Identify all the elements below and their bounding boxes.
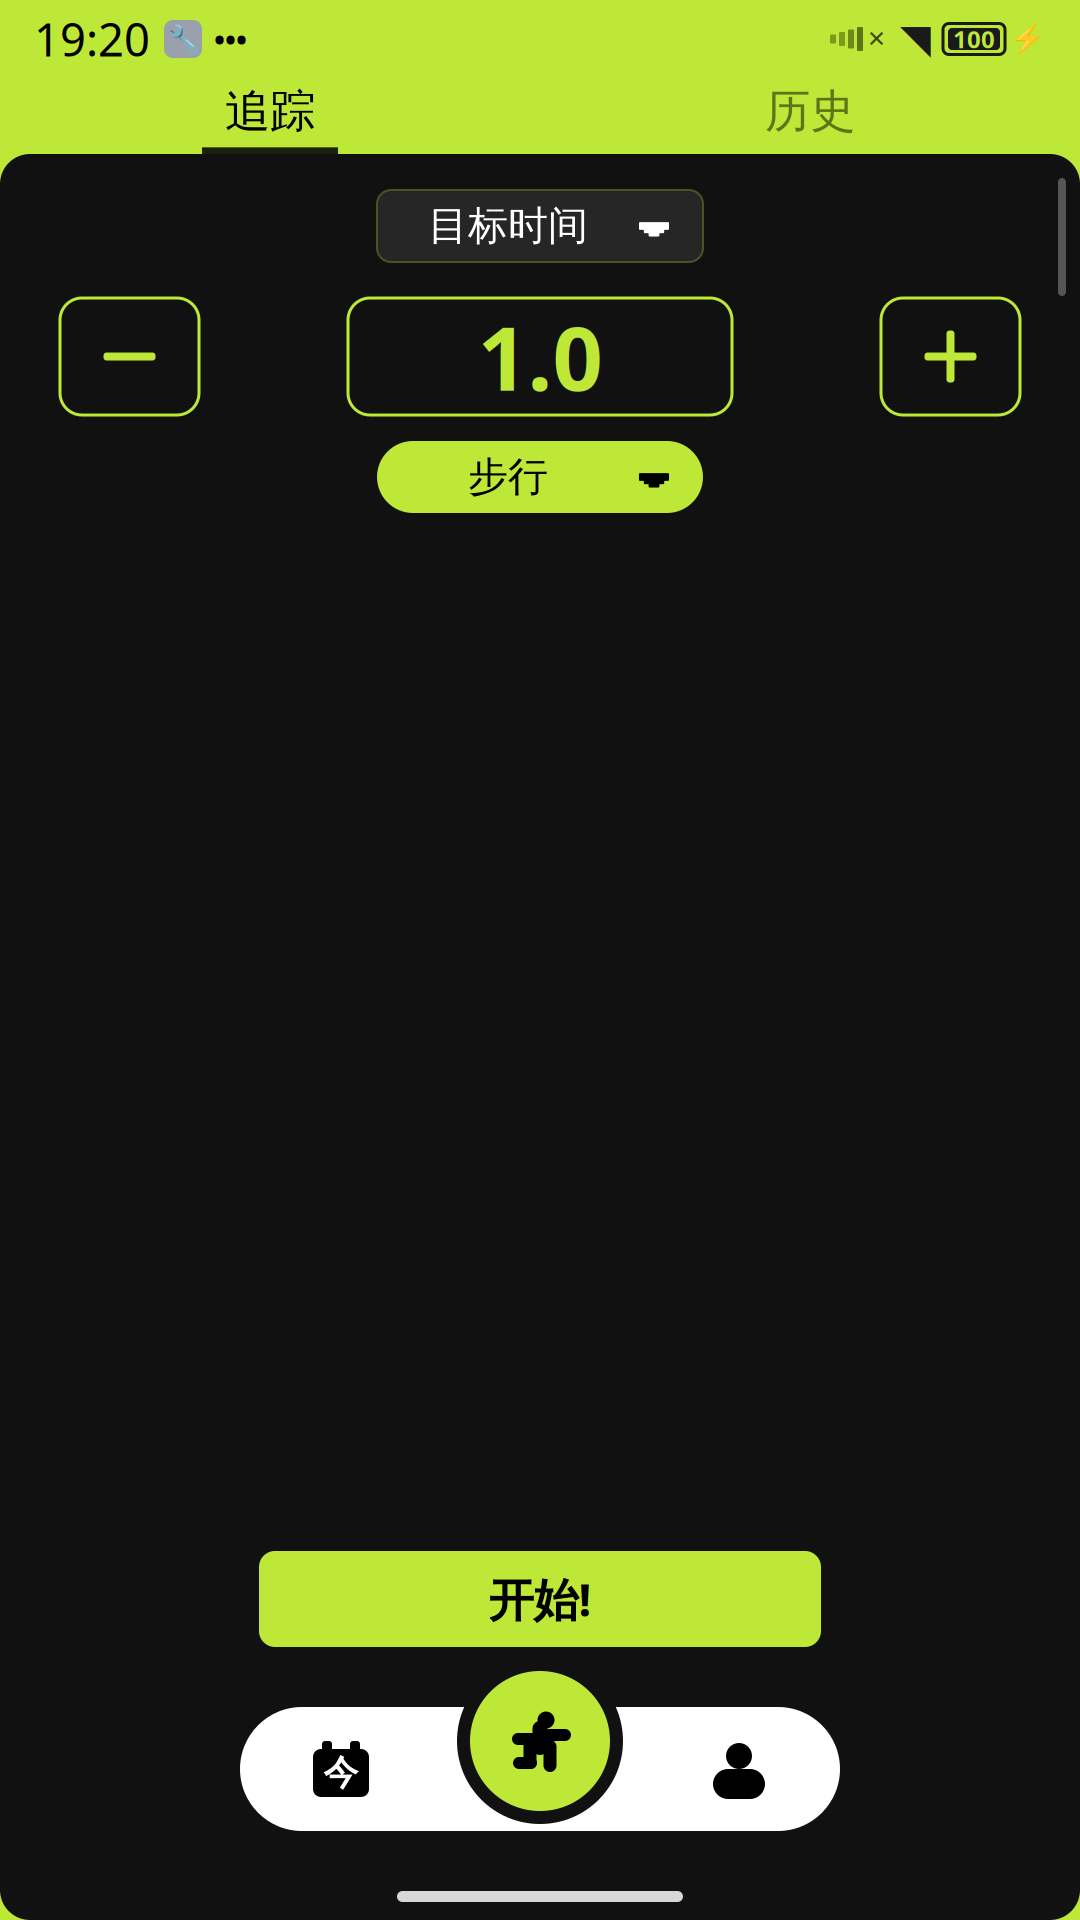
button[interactable]: 历史 <box>540 78 1080 154</box>
button[interactable]: Decrease <box>60 298 199 415</box>
staticText: 开始! <box>488 1569 591 1629</box>
button[interactable]: 1.0 <box>348 298 732 415</box>
staticText: 100 <box>953 23 995 55</box>
staticText: ◥ <box>900 16 931 62</box>
staticText: 1.0 <box>477 298 602 415</box>
button[interactable]: Today <box>240 1707 442 1831</box>
button[interactable]: 目标时间 <box>377 190 703 262</box>
staticText: 今 <box>323 1752 358 1794</box>
staticText: 🔧 <box>166 24 199 54</box>
button[interactable]: Profile <box>638 1707 840 1831</box>
staticText: ⚡ <box>1009 22 1046 56</box>
staticText: 追踪 <box>225 84 315 139</box>
staticText: 目标时间 <box>428 201 588 250</box>
staticText: ✕ <box>867 26 886 52</box>
button[interactable]: Increase <box>881 298 1020 415</box>
button[interactable]: 开始! <box>259 1551 821 1647</box>
button[interactable]: Start workout <box>457 1658 623 1824</box>
staticText: 步行 <box>468 452 548 501</box>
button[interactable]: 步行 <box>377 441 703 513</box>
staticText: ••• <box>214 19 247 58</box>
staticText: 19:20 <box>34 9 150 69</box>
staticText: 历史 <box>765 84 855 139</box>
button[interactable]: 追踪 <box>0 78 540 154</box>
